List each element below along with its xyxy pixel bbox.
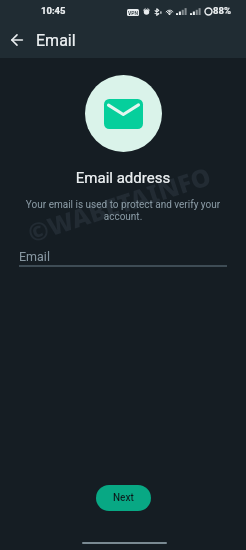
staticText: Email address — [0, 169, 246, 187]
staticText: Next — [113, 492, 134, 504]
staticText: Your email is used to protect and verify… — [24, 199, 222, 223]
staticText: 10:45 — [41, 5, 66, 16]
button[interactable]: Next — [96, 485, 151, 511]
staticText: Email — [36, 31, 76, 50]
staticText: Email — [19, 249, 50, 264]
staticText: ©WABETAINFO — [23, 158, 215, 249]
staticText: VPN — [128, 10, 139, 16]
staticText: 88% — [213, 5, 231, 16]
button[interactable]: Back — [0, 22, 33, 58]
